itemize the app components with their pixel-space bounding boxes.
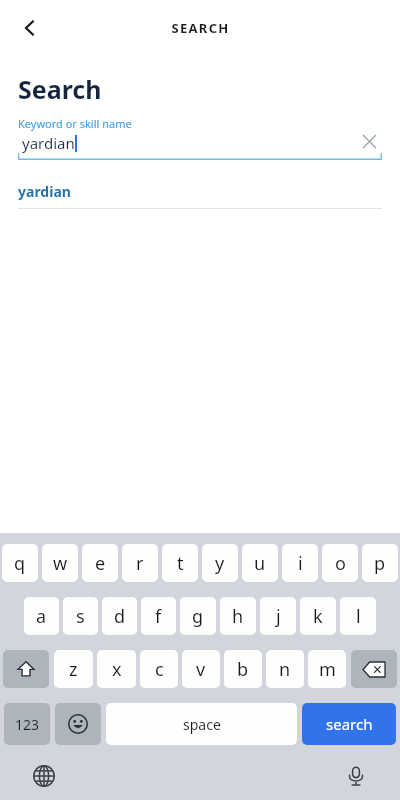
button[interactable]: v — [182, 650, 220, 688]
staticText: yardian — [18, 182, 71, 201]
button[interactable]: j — [260, 597, 296, 635]
button[interactable]: p — [362, 544, 398, 582]
button[interactable]: x — [97, 650, 136, 688]
staticText: search — [326, 714, 373, 734]
staticText: Search — [18, 72, 102, 106]
staticText: i — [298, 551, 303, 576]
button[interactable]: n — [266, 650, 304, 688]
staticText: 123 — [15, 715, 40, 734]
staticText: f — [155, 604, 162, 629]
button[interactable]: Change language — [27, 759, 61, 793]
staticText: h — [232, 604, 244, 629]
button[interactable]: t — [162, 544, 198, 582]
button[interactable]: w — [42, 544, 78, 582]
button[interactable]: q — [2, 544, 38, 582]
staticText: SEARCH — [171, 19, 230, 37]
staticText: s — [76, 604, 85, 629]
staticText: d — [114, 604, 126, 629]
button[interactable]: Voice input — [339, 759, 373, 793]
button[interactable]: s — [63, 597, 98, 635]
button[interactable]: search — [302, 703, 396, 745]
button[interactable]: r — [122, 544, 158, 582]
staticText: v — [196, 657, 206, 682]
button[interactable]: Emoji — [55, 703, 101, 745]
staticText: t — [177, 551, 184, 576]
button[interactable]: m — [308, 650, 346, 688]
staticText: n — [279, 657, 291, 682]
staticText: j — [276, 604, 281, 629]
button[interactable]: c — [140, 650, 178, 688]
staticText: p — [374, 551, 386, 576]
staticText: g — [192, 604, 204, 629]
staticText: m — [319, 657, 336, 682]
button[interactable]: k — [300, 597, 336, 635]
button[interactable]: i — [282, 544, 318, 582]
staticText: y — [215, 551, 225, 576]
button[interactable]: z — [54, 650, 93, 688]
button[interactable]: space — [106, 703, 297, 745]
button[interactable]: Clear text — [356, 128, 382, 154]
button[interactable]: Shift — [3, 650, 49, 688]
button[interactable]: f — [141, 597, 176, 635]
button[interactable]: u — [242, 544, 278, 582]
staticText: u — [254, 551, 266, 576]
staticText: Keyword or skill name — [18, 116, 132, 131]
button[interactable]: Back — [8, 6, 52, 50]
button[interactable]: l — [340, 597, 376, 635]
staticText: a — [36, 604, 47, 629]
staticText: w — [53, 551, 68, 576]
button[interactable]: h — [220, 597, 256, 635]
staticText: k — [313, 604, 323, 629]
button[interactable]: o — [322, 544, 358, 582]
button[interactable]: 123 — [4, 703, 50, 745]
staticText: space — [183, 715, 221, 734]
staticText: l — [356, 604, 361, 629]
staticText: x — [112, 657, 122, 682]
staticText: q — [14, 551, 26, 576]
staticText: c — [155, 657, 164, 682]
staticText: r — [136, 551, 144, 576]
staticText: o — [335, 551, 346, 576]
staticText: yardian — [22, 133, 75, 153]
button[interactable]: d — [102, 597, 137, 635]
button[interactable]: y — [202, 544, 238, 582]
button[interactable]: a — [24, 597, 59, 635]
staticText: e — [95, 551, 106, 576]
button[interactable]: e — [82, 544, 118, 582]
button[interactable]: yardian — [0, 174, 400, 208]
button[interactable]: g — [180, 597, 216, 635]
button[interactable]: b — [224, 650, 262, 688]
button[interactable]: Keyword or skill name — [18, 116, 382, 160]
staticText: b — [237, 657, 249, 682]
button[interactable]: Backspace — [351, 650, 397, 688]
staticText: z — [69, 657, 78, 682]
